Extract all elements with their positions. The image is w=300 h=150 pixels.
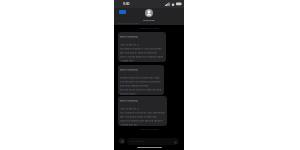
staticText: and your signature now. [120,84,149,87]
staticText: Your ticket no is [120,106,139,109]
staticText: Please share the 6 character code [120,75,160,78]
staticText: Do not share OTP/CVV with anyone. [120,88,162,91]
staticText: SR-008834-3983477. Our technician [120,47,162,50]
staticText: Yesterday 9:19 pm [114,27,184,30]
staticText: - thank you for [120,122,138,125]
staticText: 9:30 [123,2,130,6]
staticText: Dear Customer, [120,99,139,102]
staticText: Dear Customer, [120,67,139,70]
staticText: - thank you for [120,123,138,126]
staticText: will visit within next 24 working [120,115,157,118]
button[interactable]: Send [173,140,177,144]
staticText: Do not share OTP/CVV with anyone. [120,87,162,90]
staticText: and your signature now. [120,83,149,86]
staticText: Your ticket no is [120,43,139,46]
staticText: Your ticket no is [120,107,139,110]
button[interactable]: Attach [119,138,125,144]
staticText: SR-008834-3983477. Our technician [120,46,162,49]
button[interactable]: Dear Customer, [118,32,166,62]
staticText: Dear Customer, [120,35,139,38]
staticText: will visit within next 24 working [120,50,157,53]
staticText: hours to attend your service request [120,118,163,121]
staticText: Business messages [118,21,140,24]
staticText: - thank you [120,58,134,61]
staticText: Dear Customer, [120,98,139,101]
staticText: will visit within next 24 working [120,114,157,117]
staticText: hours. Kindly keep your device ready [120,54,164,57]
button[interactable]: Back [119,10,126,14]
staticText: Chat to start new [114,128,184,131]
staticText: APC-008834-44723720. Our technician [120,111,165,114]
staticText: hours to attend your service request [120,119,163,122]
staticText: Please share the 6 character code [120,76,160,79]
staticText: VM-ICICIB [143,18,155,21]
staticText: Dear Customer, [120,68,139,71]
staticText: Thanks/Team [120,92,136,95]
staticText: APC-008834-44723720. Our technician [120,110,165,113]
staticText: will visit within next 24 working [120,51,157,54]
button[interactable]: Text message [127,138,179,145]
button[interactable]: Dear Customer, [118,96,167,126]
staticText: hours. Kindly keep your device ready [120,55,164,58]
staticText: Dear Customer, [120,34,139,37]
staticText: Your ticket no is [120,42,139,45]
button[interactable]: Dear Customer, [118,65,164,95]
staticText: Thanks/Team [120,91,136,94]
staticText: 272486 with our service technician [120,80,161,83]
staticText: 272486 with our service technician [120,79,161,82]
button[interactable]: Contact avatar [145,9,153,17]
staticText: - thank you [120,59,134,62]
staticText: Text message [130,140,145,143]
